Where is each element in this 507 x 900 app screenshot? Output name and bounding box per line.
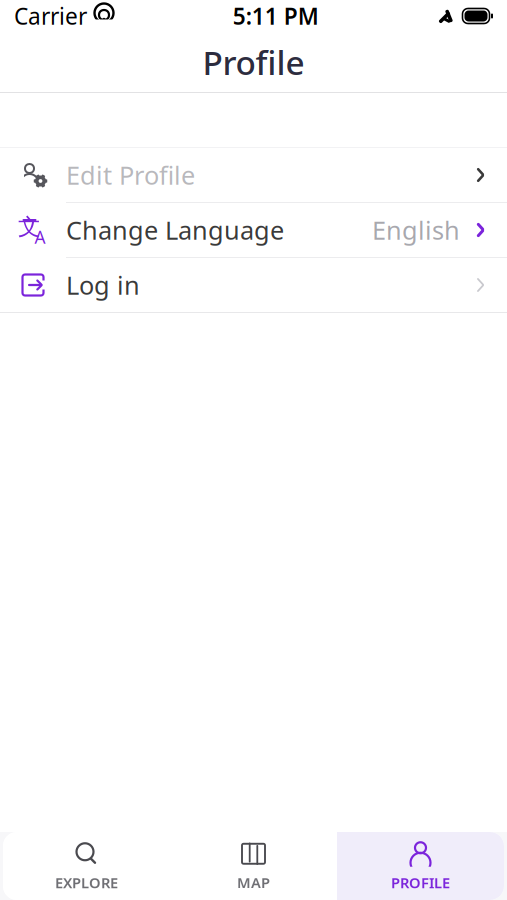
staticText: Log in: [66, 268, 140, 302]
button[interactable]: MAP: [170, 832, 337, 900]
button[interactable]: PROFILE: [337, 832, 504, 900]
staticText: EXPLORE: [55, 873, 118, 892]
staticText: 文: [18, 213, 41, 241]
button[interactable]: EXPLORE: [3, 832, 170, 900]
staticText: A: [34, 225, 45, 248]
button[interactable]: 文: [0, 203, 507, 258]
staticText: 5:11 PM: [233, 1, 319, 31]
staticText: Carrier: [14, 1, 87, 31]
staticText: Change Language: [66, 213, 284, 247]
staticText: English: [372, 213, 460, 247]
staticText: Edit Profile: [66, 158, 195, 192]
button[interactable]: Edit Profile: [0, 148, 507, 203]
staticText: Profile: [202, 40, 304, 84]
staticText: MAP: [237, 873, 270, 892]
button[interactable]: Log in: [0, 258, 507, 312]
staticText: PROFILE: [391, 873, 450, 892]
